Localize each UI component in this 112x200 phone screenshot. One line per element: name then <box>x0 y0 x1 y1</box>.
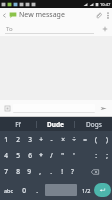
staticText: * <box>39 151 43 160</box>
button[interactable]: : <box>90 147 101 163</box>
button[interactable]: = <box>79 131 90 147</box>
button[interactable]: 3 <box>24 131 35 147</box>
button[interactable]: Attach <box>93 8 104 22</box>
button[interactable]: ÷ <box>68 131 79 147</box>
button[interactable]: 9 <box>23 163 34 180</box>
staticText: 0 <box>22 186 26 195</box>
button[interactable]: Dogs <box>75 117 112 131</box>
button[interactable]: / <box>46 147 57 163</box>
staticText: 5 <box>16 151 20 160</box>
staticText: " <box>61 151 64 160</box>
staticText: ) <box>106 135 108 144</box>
button[interactable]: 7 <box>0 163 12 180</box>
staticText: 1 <box>4 135 8 144</box>
button[interactable]: Ff <box>0 117 36 131</box>
button[interactable]: × <box>57 131 68 147</box>
staticText: 3 <box>28 135 32 144</box>
staticText: To <box>6 25 13 33</box>
button[interactable]: 8 <box>12 163 23 180</box>
button[interactable]: Back <box>0 8 9 22</box>
button[interactable]: abc <box>0 181 17 199</box>
button[interactable]: 2 <box>12 131 24 147</box>
staticText: Dogs <box>86 120 102 129</box>
button[interactable]: Backspace <box>78 163 112 180</box>
staticText: × <box>61 135 65 144</box>
button[interactable]: 1 <box>0 131 12 147</box>
button[interactable]: ; <box>101 147 112 163</box>
staticText: ? <box>71 167 74 176</box>
staticText: ÷ <box>72 135 76 144</box>
staticText: abc <box>4 187 14 194</box>
button[interactable]: Enter <box>94 183 111 197</box>
staticText: Dude <box>47 120 64 129</box>
staticText: . <box>36 186 38 195</box>
button[interactable]: . <box>30 181 43 199</box>
button[interactable]: ! <box>56 163 67 180</box>
button[interactable]: 4 <box>0 147 12 163</box>
button[interactable]: + <box>35 131 46 147</box>
button[interactable]: More options <box>104 8 112 22</box>
staticText: New message <box>19 10 65 20</box>
staticText: : <box>95 151 97 160</box>
staticText: . <box>50 167 52 176</box>
staticText: 4 <box>4 151 8 160</box>
button[interactable]: * <box>35 147 46 163</box>
staticText: 1/2 <box>82 187 91 194</box>
staticText: + <box>39 135 43 144</box>
button[interactable]: ? <box>67 163 78 180</box>
button[interactable]: Send <box>97 102 110 115</box>
staticText: = <box>83 135 87 144</box>
staticText: 8 <box>16 167 20 176</box>
button[interactable] <box>13 104 95 113</box>
button[interactable]: To <box>0 22 112 36</box>
staticText: ; <box>106 151 108 160</box>
staticText: ' <box>73 151 75 160</box>
button[interactable]: " <box>57 147 68 163</box>
staticText: ( <box>95 135 97 144</box>
button[interactable]: . <box>45 163 56 180</box>
button[interactable]: ) <box>101 131 112 147</box>
staticText: 7 <box>4 167 8 176</box>
staticText: - <box>50 135 53 144</box>
button[interactable]: ' <box>68 147 79 163</box>
button[interactable]: 0 <box>17 181 30 199</box>
staticText: , <box>39 167 41 176</box>
button[interactable]: - <box>46 131 57 147</box>
button[interactable]: 1/2 <box>79 181 93 199</box>
button[interactable]: , <box>34 163 45 180</box>
button[interactable]: 5 <box>12 147 24 163</box>
staticText: ! <box>61 167 63 176</box>
button[interactable]: ( <box>90 131 101 147</box>
staticText: 2 <box>16 135 20 144</box>
staticText: 10:47 <box>100 2 111 7</box>
button[interactable]: 6 <box>24 147 35 163</box>
button[interactable]: Add recipient <box>98 22 112 36</box>
staticText: Ff <box>15 120 21 129</box>
staticText: 9 <box>27 167 31 176</box>
button[interactable]: Dude <box>37 117 74 131</box>
staticText: 6 <box>28 151 32 160</box>
button[interactable]: Emoji <box>2 103 13 114</box>
staticText: / <box>50 151 53 160</box>
